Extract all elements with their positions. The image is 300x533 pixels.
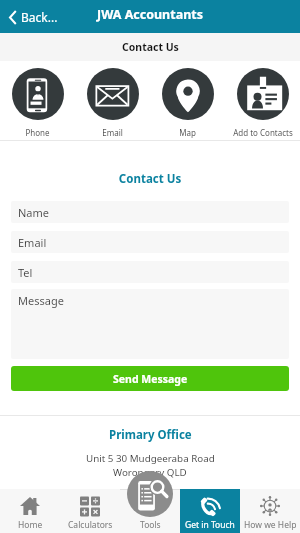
staticText: Get in Touch — [185, 519, 235, 531]
staticText: Contact Us — [122, 40, 179, 54]
button[interactable]: Tools — [127, 471, 173, 531]
staticText: Name — [18, 205, 50, 220]
button[interactable]: Get in Touch — [180, 489, 240, 533]
button[interactable]: Send Message — [11, 366, 289, 391]
staticText: Add to Contacts — [233, 127, 293, 138]
button[interactable]: Add to Contacts — [225, 63, 300, 138]
staticText: Contact Us — [11, 171, 289, 187]
staticText: Phone — [25, 127, 50, 138]
button[interactable]: How we Help — [240, 489, 300, 533]
staticText: Map — [179, 127, 196, 138]
staticText: Back... — [21, 9, 58, 25]
button[interactable]: Email — [75, 63, 150, 138]
button[interactable]: Back... — [0, 9, 64, 25]
button[interactable]: Calculators — [60, 489, 120, 533]
button[interactable]: Email — [11, 231, 289, 253]
staticText: Calculators — [68, 519, 113, 531]
staticText: Send Message — [113, 372, 188, 386]
button[interactable]: Phone — [0, 63, 75, 138]
staticText: How we Help — [244, 519, 297, 531]
button[interactable]: Tools — [120, 489, 180, 533]
staticText: Message — [18, 293, 64, 308]
staticText: Unit 5 30 Mudgeeraba Road — [86, 452, 215, 465]
button[interactable]: Home — [0, 489, 60, 533]
staticText: JWA Accountants — [97, 6, 203, 23]
button[interactable]: Name — [11, 201, 289, 223]
staticText: Primary Office — [109, 427, 192, 443]
button[interactable]: Tel — [11, 261, 289, 283]
staticText: Tel — [18, 265, 33, 280]
staticText: Worongary QLD — [113, 466, 187, 479]
button[interactable]: Message — [11, 289, 289, 359]
button[interactable]: Map — [150, 63, 225, 138]
staticText: Email — [18, 235, 47, 250]
staticText: Tools — [140, 519, 161, 531]
staticText: Email — [102, 127, 123, 138]
staticText: Home — [18, 519, 43, 531]
